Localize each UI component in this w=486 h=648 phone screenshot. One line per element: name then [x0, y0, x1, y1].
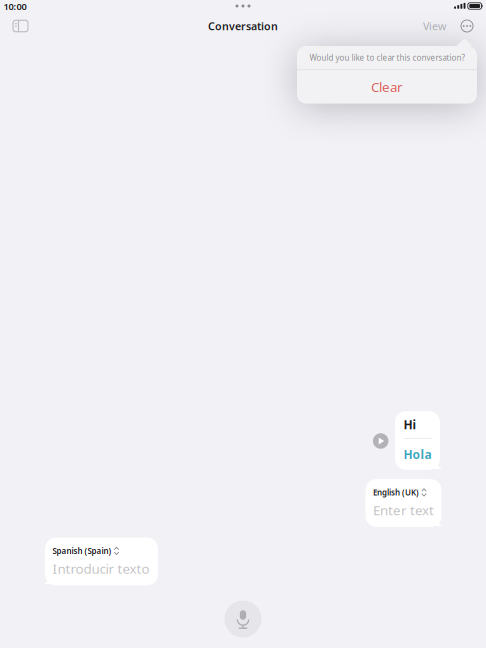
button[interactable]: Spanish (Spain): [45, 538, 158, 585]
staticText: 10:00: [3, 0, 26, 13]
button[interactable]: Hi: [395, 411, 440, 470]
staticText: Enter text: [373, 501, 434, 519]
staticText: English (UK): [373, 487, 419, 498]
staticText: Hola: [403, 446, 431, 462]
staticText: Conversation: [208, 19, 278, 33]
button[interactable]: Show Sidebar: [13, 20, 28, 32]
button[interactable]: Clear: [297, 70, 477, 104]
button[interactable]: Record: [224, 600, 261, 637]
button[interactable]: English (UK): [365, 479, 441, 527]
staticText: Clear: [371, 78, 403, 96]
button[interactable]: Play translation: [373, 433, 388, 449]
button[interactable]: More: [461, 20, 473, 32]
staticText: Hi: [403, 417, 416, 433]
staticText: Introducir texto: [52, 560, 149, 577]
staticText: Would you like to clear this conversatio…: [309, 52, 464, 63]
button[interactable]: View: [423, 19, 446, 33]
staticText: Spanish (Spain): [52, 546, 111, 556]
staticText: View: [423, 19, 446, 33]
